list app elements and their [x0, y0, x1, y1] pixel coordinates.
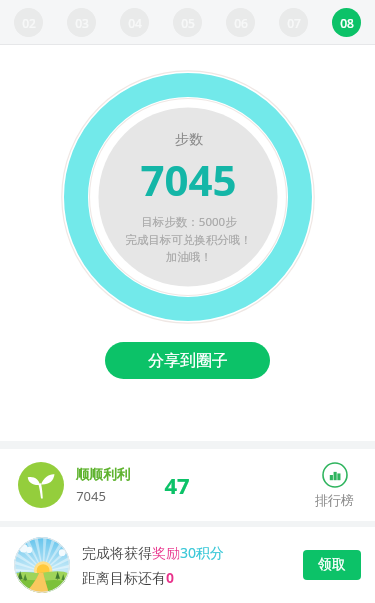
staticText: 完成将获得奖励30积分	[82, 543, 225, 562]
staticText: 02	[22, 15, 36, 31]
staticText: 加油哦！	[166, 250, 212, 264]
staticText: 04	[128, 15, 142, 31]
staticText: 47	[164, 470, 190, 500]
staticText: 03	[75, 15, 89, 31]
staticText: 7045	[76, 487, 106, 505]
button[interactable]: 02	[14, 8, 43, 37]
button[interactable]: 05	[173, 8, 202, 37]
staticText: 05	[181, 15, 195, 31]
staticText: 06	[234, 15, 248, 31]
button[interactable]: 分享到圈子	[105, 342, 270, 379]
staticText: 目标步数：5000步	[141, 214, 237, 230]
staticText: 完成目标可兑换积分哦！	[125, 233, 252, 247]
staticText: 7045	[140, 151, 237, 208]
button[interactable]: 顺顺利利	[0, 449, 375, 521]
staticText: 步数	[175, 131, 203, 149]
staticText: 顺顺利利	[76, 466, 130, 483]
staticText: 领取	[318, 556, 346, 574]
button[interactable]: 03	[67, 8, 96, 37]
button[interactable]: 08	[332, 8, 361, 37]
staticText: 距离目标还有0	[82, 568, 175, 587]
button[interactable]: 排行榜	[312, 459, 357, 511]
staticText: 排行榜	[315, 492, 354, 508]
button[interactable]: 领取	[303, 550, 361, 580]
button[interactable]: 07	[279, 8, 308, 37]
button[interactable]: 06	[226, 8, 255, 37]
staticText: 07	[287, 15, 301, 31]
staticText: 08	[340, 15, 354, 31]
staticText: 分享到圈子	[148, 351, 228, 371]
button[interactable]: 04	[120, 8, 149, 37]
